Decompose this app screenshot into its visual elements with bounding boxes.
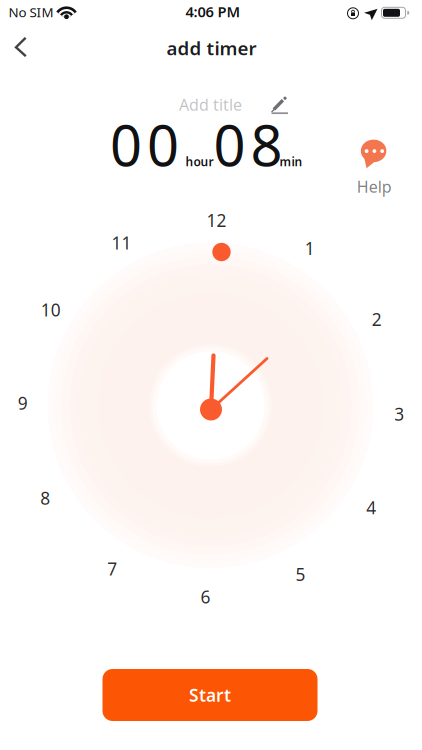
button[interactable]: Start <box>102 669 317 721</box>
staticText: 7 <box>107 557 117 580</box>
staticText: 10 <box>41 298 61 321</box>
staticText: 00 <box>110 107 179 182</box>
staticText: hour <box>185 153 213 169</box>
staticText: No SIM <box>8 3 53 21</box>
staticText: 5 <box>295 563 305 586</box>
button[interactable]: Add title <box>149 87 295 121</box>
staticText: 6 <box>200 585 210 608</box>
staticText: 4:06 PM <box>185 2 240 21</box>
staticText: Help <box>357 176 392 197</box>
staticText: 1 <box>305 237 315 260</box>
staticText: 11 <box>112 231 132 254</box>
staticText: 9 <box>18 392 28 415</box>
staticText: 08 <box>213 107 282 182</box>
staticText: 3 <box>394 402 404 425</box>
staticText: 2 <box>372 308 382 331</box>
staticText: min <box>279 153 302 169</box>
staticText: Start <box>189 683 231 706</box>
staticText: 8 <box>40 486 50 509</box>
button[interactable]: Back <box>2 26 46 70</box>
staticText: add timer <box>166 36 256 60</box>
button[interactable]: Help <box>351 134 397 198</box>
staticText: 4 <box>366 496 376 519</box>
staticText: 12 <box>206 209 226 232</box>
staticText: Add title <box>179 94 242 115</box>
